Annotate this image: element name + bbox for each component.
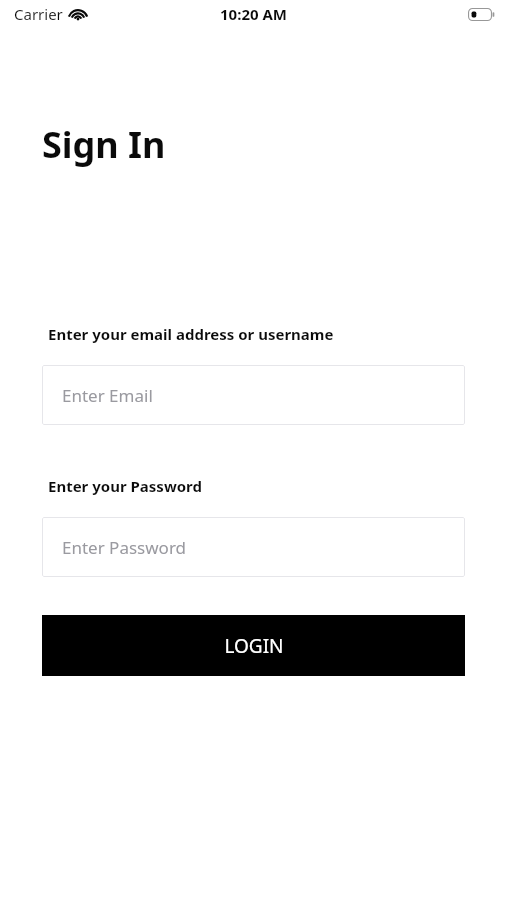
staticText: 10:20 AM [220,4,287,24]
staticText: LOGIN [224,633,284,659]
staticText: Enter your email address or username [48,324,334,344]
staticText: Carrier [14,4,63,24]
button[interactable]: LOGIN [42,615,465,676]
staticText: Enter Email [62,384,153,407]
staticText: Sign In [42,120,166,169]
staticText: Enter Password [62,536,187,559]
button[interactable]: Email input field [42,365,465,425]
button[interactable]: Password input field [42,517,465,577]
staticText: Enter your Password [48,476,202,496]
